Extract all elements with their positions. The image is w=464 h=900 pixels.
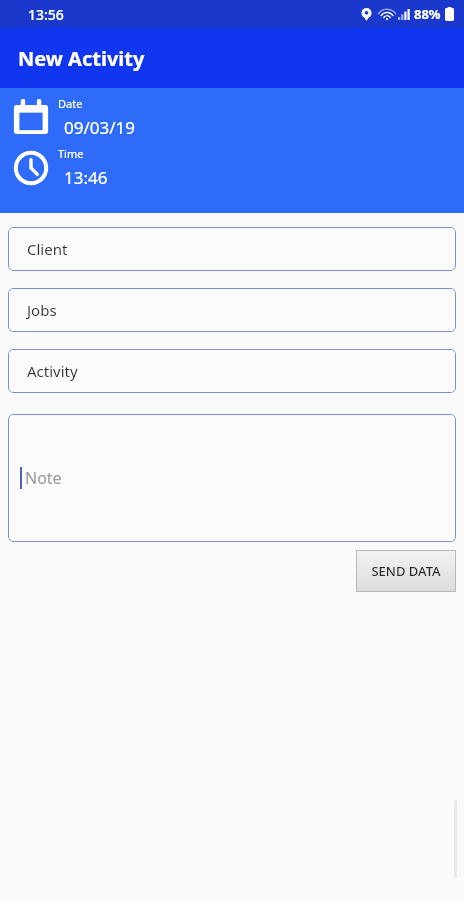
other: Pick date (12, 99, 50, 137)
button[interactable]: Pick time (0, 146, 464, 189)
staticText: Client (27, 239, 68, 259)
staticText: Activity (27, 361, 78, 381)
button[interactable]: Pick date (0, 96, 464, 139)
other: Pick time (12, 149, 50, 187)
staticText: 13:46 (64, 166, 108, 189)
staticText: SEND DATA (371, 562, 441, 580)
staticText: Note (25, 467, 62, 489)
button[interactable]: Jobs (8, 288, 456, 332)
staticText: Date (58, 96, 83, 111)
staticText: New Activity (18, 45, 145, 72)
staticText: Jobs (27, 300, 57, 320)
button[interactable]: Client (8, 227, 456, 271)
staticText: 13:56 (28, 5, 64, 24)
staticText: 09/03/19 (64, 116, 135, 139)
button[interactable]: SEND DATA (356, 550, 456, 592)
button[interactable]: Note (8, 414, 456, 542)
staticText: Time (58, 146, 84, 161)
staticText: 88% (414, 5, 441, 23)
button[interactable]: Activity (8, 349, 456, 393)
